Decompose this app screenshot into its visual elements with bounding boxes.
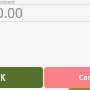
button[interactable]: Cancel <box>44 67 90 88</box>
staticText: OK <box>0 72 6 83</box>
staticText: 0.00 <box>0 4 23 22</box>
staticText: Cancel <box>79 73 90 83</box>
button[interactable] <box>68 88 90 90</box>
staticText: ontent <box>0 0 16 5</box>
button[interactable]: OK <box>0 67 43 88</box>
